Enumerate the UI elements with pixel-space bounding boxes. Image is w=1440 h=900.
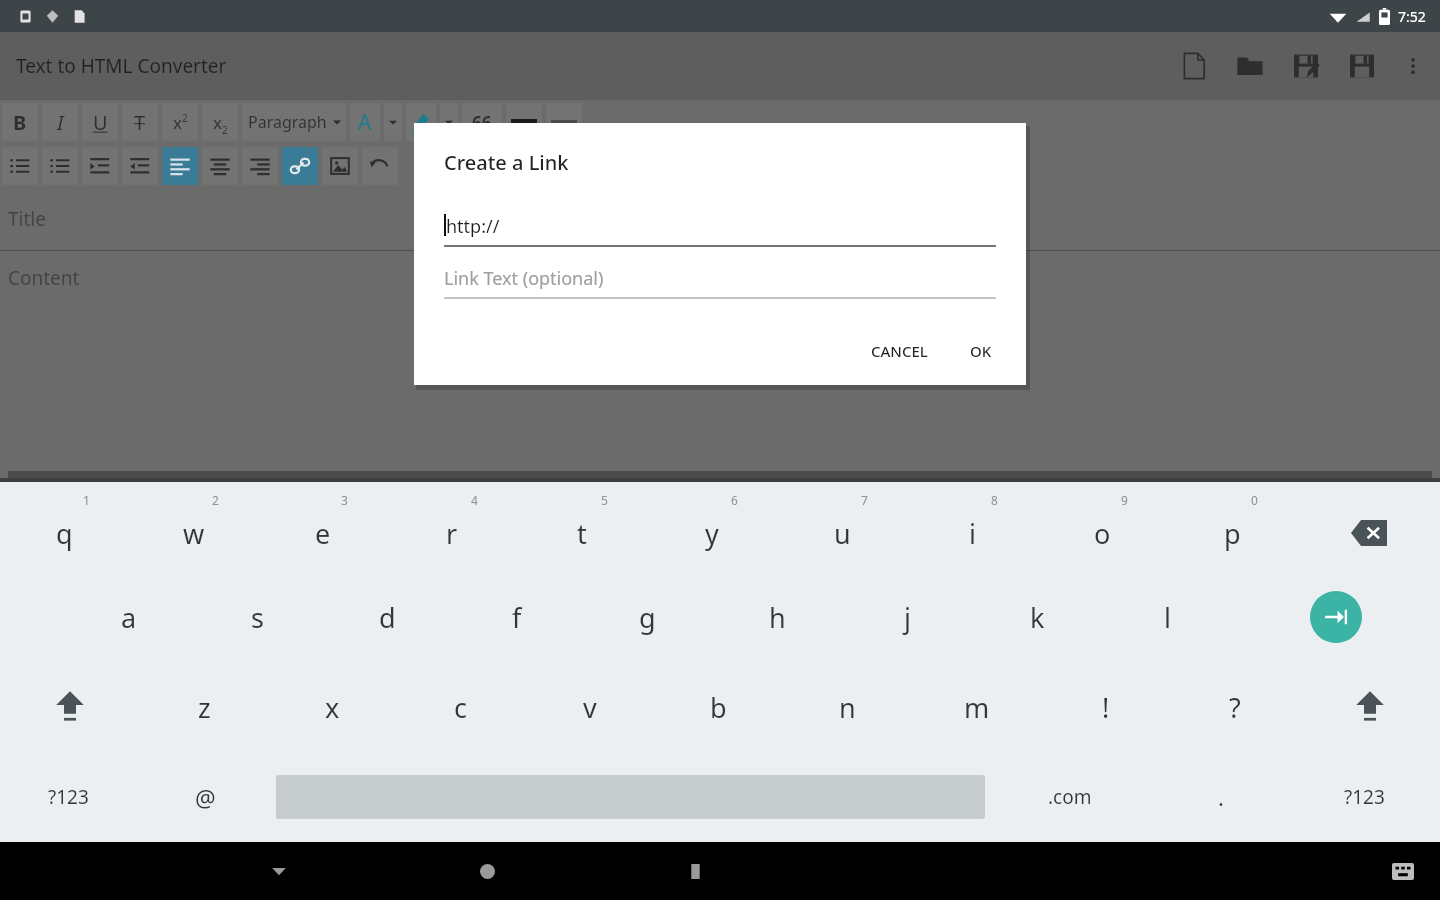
button[interactable]: x bbox=[268, 662, 396, 752]
button[interactable]: ?123 bbox=[1289, 752, 1440, 842]
button[interactable] bbox=[322, 147, 358, 185]
button[interactable]: Backspace bbox=[1297, 482, 1440, 572]
button[interactable]: c bbox=[396, 662, 525, 752]
button[interactable] bbox=[506, 103, 542, 141]
button[interactable]: Switch keyboard bbox=[1374, 842, 1432, 900]
button[interactable]: T bbox=[122, 103, 158, 141]
button[interactable]: Next field bbox=[1232, 572, 1440, 662]
button[interactable]: Title bbox=[0, 188, 1440, 250]
button[interactable]: @ bbox=[137, 752, 274, 842]
staticText: 8 bbox=[991, 492, 998, 508]
button[interactable]: Open file bbox=[1222, 38, 1278, 94]
button[interactable]: z bbox=[140, 662, 268, 752]
staticText: w bbox=[183, 515, 205, 552]
button[interactable]: k bbox=[972, 572, 1102, 662]
button[interactable]: ! bbox=[1041, 662, 1170, 752]
button[interactable]: B bbox=[2, 103, 38, 141]
staticText: http:// bbox=[446, 214, 500, 239]
button[interactable]: h bbox=[712, 572, 842, 662]
button[interactable]: More options bbox=[1390, 43, 1436, 89]
button[interactable]: Recent apps bbox=[666, 842, 724, 900]
staticText: @ bbox=[195, 782, 216, 813]
button[interactable]: ? bbox=[1170, 662, 1299, 752]
staticText: e bbox=[315, 515, 331, 552]
button[interactable]: Shift bbox=[0, 662, 140, 752]
button[interactable]: m bbox=[912, 662, 1041, 752]
button[interactable]: Save as bbox=[1278, 38, 1334, 94]
button[interactable]: OK bbox=[954, 331, 1008, 371]
button[interactable]: Content bbox=[0, 251, 1440, 471]
button[interactable]: I bbox=[42, 103, 78, 141]
button[interactable] bbox=[384, 103, 402, 141]
button[interactable]: d bbox=[322, 572, 452, 662]
staticText: Link Text (optional) bbox=[444, 266, 604, 291]
button[interactable]: CANCEL bbox=[855, 331, 944, 371]
button[interactable]: .com bbox=[987, 752, 1152, 842]
button[interactable]: U bbox=[82, 103, 118, 141]
staticText: b bbox=[710, 689, 727, 726]
button[interactable]: g bbox=[582, 572, 712, 662]
button[interactable] bbox=[82, 147, 118, 185]
button[interactable]: . bbox=[1152, 752, 1289, 842]
button[interactable]: ?123 bbox=[0, 752, 137, 842]
staticText: B bbox=[13, 109, 27, 136]
button[interactable]: x bbox=[162, 103, 198, 141]
button[interactable]: 9 bbox=[1037, 482, 1167, 572]
button[interactable]: j bbox=[842, 572, 972, 662]
button[interactable]: 0 bbox=[1167, 482, 1297, 572]
staticText: 66 bbox=[472, 111, 492, 134]
button[interactable]: Shift bbox=[1299, 662, 1440, 752]
staticText: o bbox=[1094, 515, 1111, 552]
staticText: n bbox=[839, 689, 856, 726]
button[interactable] bbox=[202, 147, 238, 185]
button[interactable]: 66 bbox=[462, 103, 502, 141]
staticText: f bbox=[512, 599, 522, 636]
button[interactable]: Space bbox=[274, 752, 987, 842]
button[interactable]: b bbox=[654, 662, 783, 752]
button[interactable] bbox=[2, 147, 38, 185]
button[interactable]: f bbox=[452, 572, 582, 662]
button[interactable]: Save bbox=[1334, 38, 1390, 94]
button[interactable]: 4 bbox=[387, 482, 517, 572]
staticText: j bbox=[904, 599, 911, 636]
button[interactable]: n bbox=[783, 662, 912, 752]
button[interactable]: 3 bbox=[258, 482, 387, 572]
button[interactable] bbox=[42, 147, 78, 185]
staticText: T bbox=[134, 109, 146, 136]
button[interactable]: Hide keyboard bbox=[250, 842, 308, 900]
button[interactable]: 8 bbox=[907, 482, 1037, 572]
staticText: l bbox=[1164, 599, 1171, 636]
staticText: u bbox=[834, 515, 851, 552]
button[interactable] bbox=[440, 103, 458, 141]
staticText: 7 bbox=[861, 492, 868, 508]
button[interactable]: 5 bbox=[517, 482, 647, 572]
staticText: ?123 bbox=[48, 784, 89, 810]
button[interactable] bbox=[122, 147, 158, 185]
staticText: 2 bbox=[212, 492, 219, 508]
button[interactable]: 1 bbox=[0, 482, 129, 572]
staticText: q bbox=[56, 515, 73, 552]
button[interactable]: 2 bbox=[129, 482, 258, 572]
button[interactable]: v bbox=[525, 662, 654, 752]
button[interactable]: a bbox=[64, 572, 193, 662]
button[interactable]: Link Text (optional) bbox=[444, 255, 996, 299]
button[interactable] bbox=[162, 147, 198, 185]
button[interactable]: Paragraph bbox=[242, 103, 346, 141]
button[interactable]: http:// bbox=[444, 203, 996, 247]
staticText: z bbox=[198, 689, 211, 726]
button[interactable]: l bbox=[1102, 572, 1232, 662]
button[interactable] bbox=[282, 147, 318, 185]
staticText: m bbox=[964, 689, 990, 726]
button[interactable]: x bbox=[202, 103, 238, 141]
button[interactable]: A bbox=[350, 103, 380, 141]
button[interactable]: 7 bbox=[777, 482, 907, 572]
button[interactable] bbox=[242, 147, 278, 185]
button[interactable]: s bbox=[193, 572, 322, 662]
staticText: Content bbox=[8, 265, 80, 291]
button[interactable]: 6 bbox=[647, 482, 777, 572]
button[interactable]: Home bbox=[458, 842, 516, 900]
button[interactable] bbox=[406, 103, 436, 141]
button[interactable] bbox=[546, 103, 582, 141]
button[interactable] bbox=[362, 147, 398, 185]
button[interactable]: New document bbox=[1166, 38, 1222, 94]
